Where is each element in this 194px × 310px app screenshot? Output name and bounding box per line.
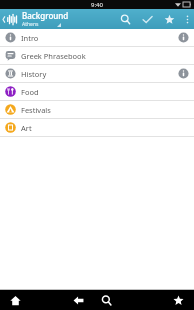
button[interactable]: Search	[92, 290, 120, 310]
button[interactable]: Greek Phrasebook	[0, 47, 194, 64]
staticText: 9:40	[91, 1, 103, 9]
staticText: History	[21, 69, 178, 79]
button[interactable]: History	[0, 65, 194, 82]
button[interactable]: Search	[114, 9, 136, 29]
staticText: Greek Phrasebook	[21, 51, 178, 61]
button[interactable]: Festivals	[0, 101, 194, 118]
staticText: Athens	[22, 21, 39, 28]
staticText: Festivals	[21, 105, 178, 115]
button[interactable]: Home	[0, 290, 30, 310]
staticText: Food	[21, 87, 178, 97]
button[interactable]: Back	[64, 290, 92, 310]
button[interactable]: Art	[0, 119, 194, 136]
staticText: Art	[21, 123, 178, 133]
button[interactable]: More options	[180, 9, 194, 29]
button[interactable]: Mark read	[136, 9, 158, 29]
button[interactable]: Favorite	[158, 9, 180, 29]
button[interactable]: Food	[0, 83, 194, 100]
button[interactable]: Navigate up	[0, 9, 20, 29]
button[interactable]: Favorites	[163, 290, 194, 310]
button[interactable]: Info	[178, 68, 189, 79]
button[interactable]: Intro	[0, 29, 194, 46]
button[interactable]: Background	[20, 9, 114, 29]
button[interactable]: Info	[178, 32, 189, 43]
staticText: Intro	[21, 33, 178, 43]
staticText: Background	[22, 10, 69, 21]
